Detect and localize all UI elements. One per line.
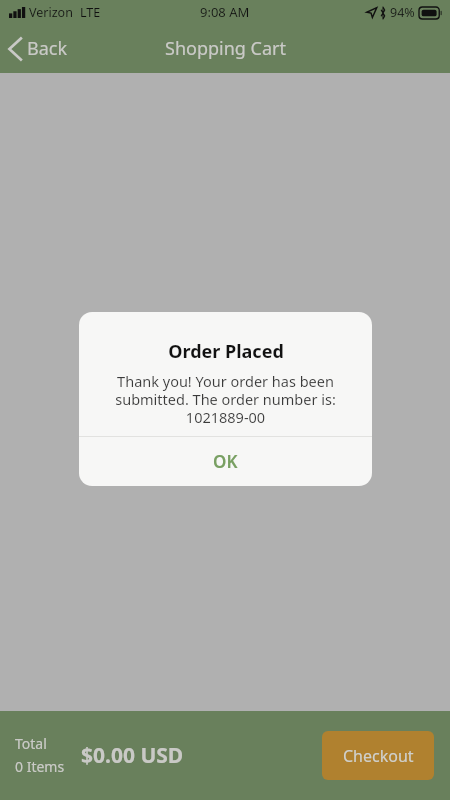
staticText: Checkout (343, 745, 414, 767)
staticText: 0 Items (15, 757, 65, 776)
staticText: 9:08 AM (200, 3, 250, 21)
button[interactable]: Checkout (322, 731, 434, 780)
button[interactable]: OK (79, 437, 372, 486)
staticText: Total (15, 734, 47, 753)
staticText: Thank you! Your order has been submitted… (95, 371, 356, 427)
staticText: $0.00 USD (81, 741, 184, 770)
staticText: OK (213, 450, 238, 473)
staticText: Back (27, 36, 68, 61)
staticText: 94% (390, 4, 415, 21)
staticText: LTE (80, 4, 101, 21)
staticText: Shopping Cart (165, 36, 286, 61)
staticText: Order Placed (168, 339, 284, 364)
button[interactable]: Back (0, 24, 78, 73)
staticText: Verizon (29, 4, 73, 21)
